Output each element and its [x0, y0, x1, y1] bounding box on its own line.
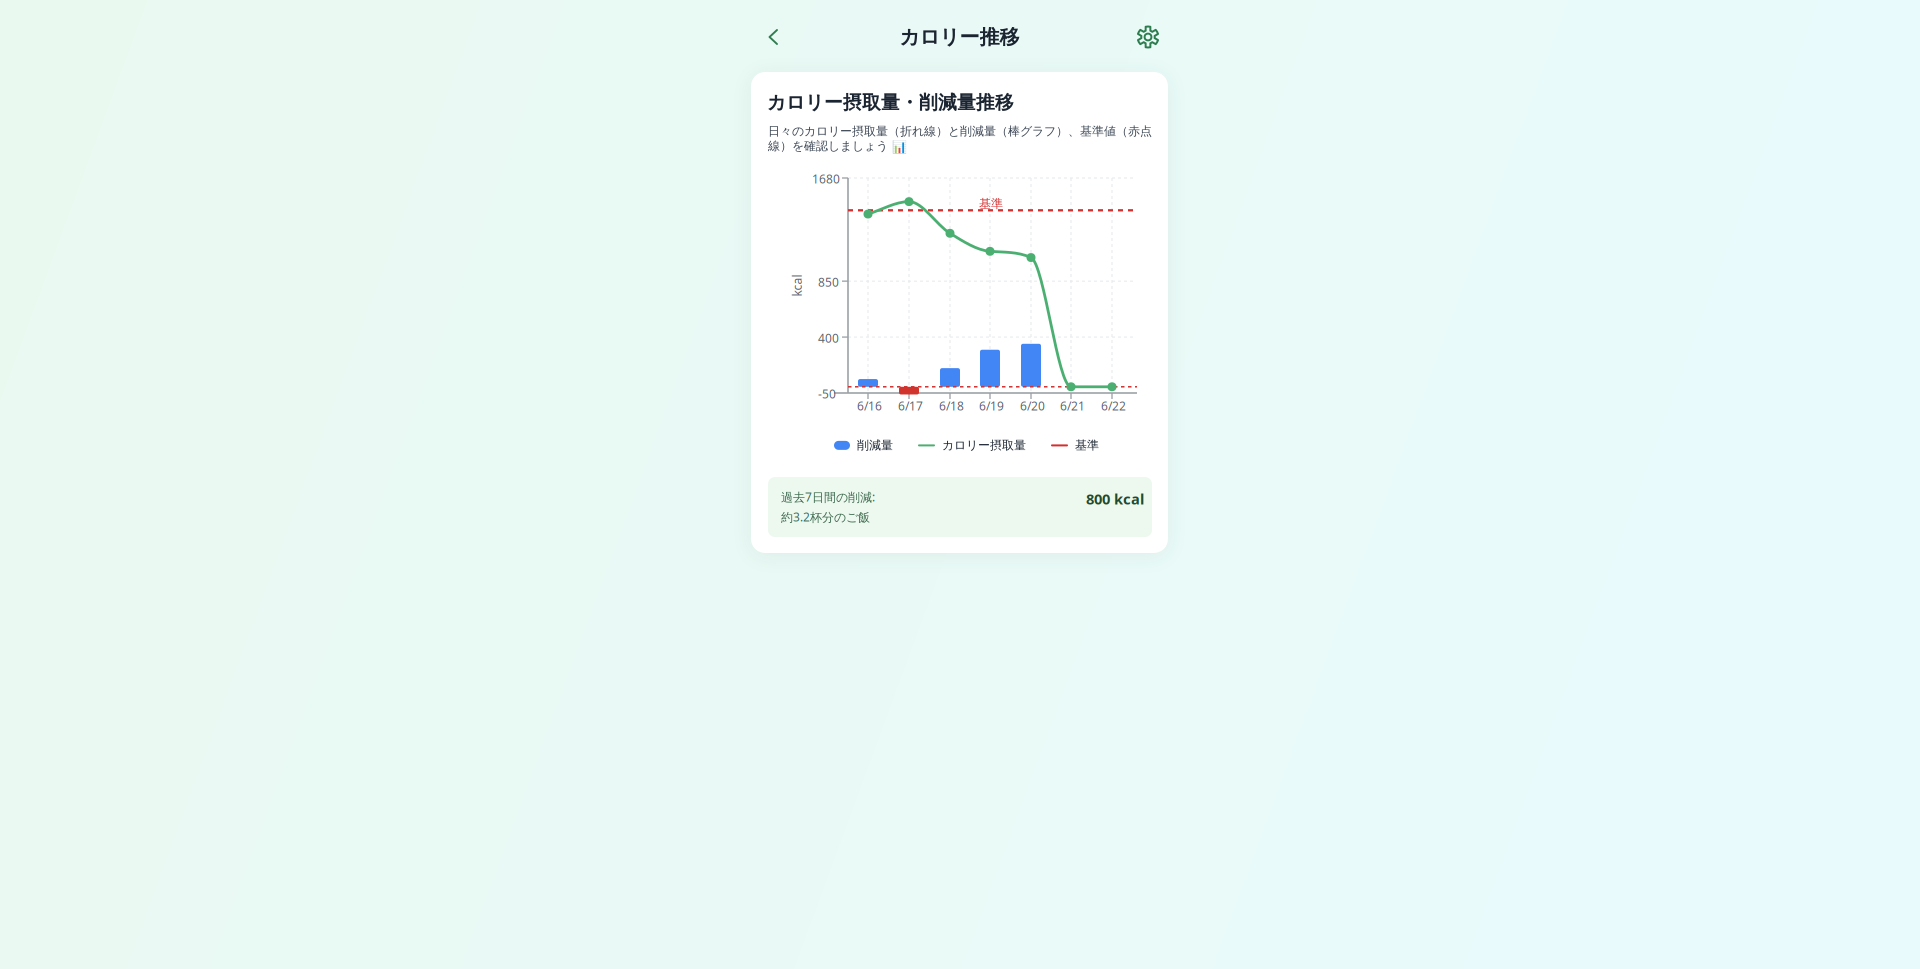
staticText: 日々のカロリー摂取量（折れ線）と削減量（棒グラフ）、基準値（赤点線）を確認しまし… — [768, 124, 1152, 153]
button[interactable]: Back — [760, 21, 794, 53]
staticText: 6/16 — [857, 398, 882, 414]
staticText: カロリー摂取量・削減量推移 — [767, 91, 1014, 114]
button[interactable]: Settings — [1131, 21, 1165, 53]
staticText: 400 — [818, 330, 839, 346]
staticText: 基準 — [1075, 438, 1099, 453]
staticText: カロリー摂取量 — [942, 438, 1026, 453]
staticText: 800 kcal — [1086, 489, 1144, 508]
staticText: 850 — [818, 274, 839, 290]
staticText: 基準 — [979, 196, 1003, 211]
staticText: 6/22 — [1101, 398, 1126, 414]
staticText: -50 — [818, 386, 836, 402]
staticText: 6/20 — [1020, 398, 1045, 414]
staticText: kcal — [786, 277, 808, 293]
staticText: 6/19 — [979, 398, 1004, 414]
staticText: 1680 — [812, 171, 840, 187]
staticText: 6/21 — [1060, 398, 1085, 414]
staticText: カロリー推移 — [899, 25, 1019, 49]
staticText: 削減量 — [857, 438, 893, 453]
staticText: 約3.2杯分のご飯 — [781, 509, 870, 525]
staticText: 過去7日間の削減: — [781, 489, 875, 505]
staticText: 6/18 — [939, 398, 964, 414]
staticText: 6/17 — [898, 398, 923, 414]
